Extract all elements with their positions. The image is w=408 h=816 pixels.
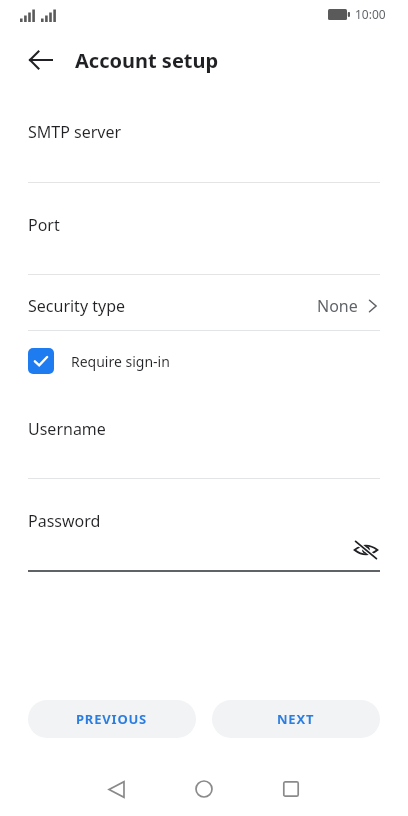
- button[interactable]: Require sign-in: [0, 341, 408, 381]
- staticText: None: [317, 295, 358, 317]
- button[interactable]: PREVIOUS: [28, 700, 196, 738]
- button[interactable]: SMTP server: [0, 110, 408, 154]
- staticText: Password: [28, 510, 101, 532]
- staticText: Security type: [28, 295, 126, 317]
- button[interactable]: Username: [0, 407, 408, 451]
- staticText: Username: [28, 418, 106, 440]
- button[interactable]: Recent apps: [273, 771, 309, 807]
- button[interactable]: Back: [22, 41, 60, 79]
- button[interactable]: Home: [186, 771, 222, 807]
- button[interactable]: Port: [0, 203, 408, 247]
- button[interactable]: Back: [98, 771, 134, 807]
- staticText: PREVIOUS: [76, 710, 148, 728]
- button[interactable]: Security type: [0, 282, 408, 330]
- button[interactable]: NEXT: [212, 700, 380, 738]
- staticText: 10:00: [355, 6, 386, 22]
- staticText: NEXT: [277, 710, 315, 728]
- staticText: Port: [28, 214, 60, 236]
- button[interactable]: Password: [0, 499, 408, 543]
- staticText: SMTP server: [28, 121, 122, 143]
- button[interactable]: Show password: [348, 532, 384, 568]
- staticText: Account setup: [75, 47, 219, 74]
- staticText: Require sign-in: [71, 352, 170, 371]
